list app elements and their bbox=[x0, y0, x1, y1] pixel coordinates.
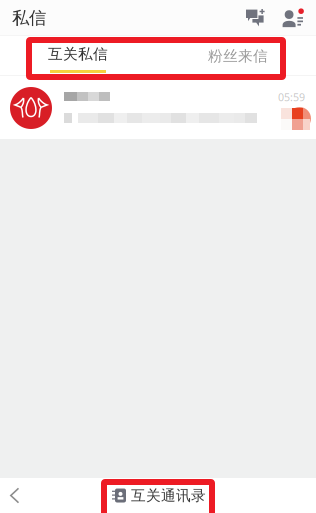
button[interactable]: 互关私信 bbox=[23, 36, 133, 76]
button[interactable]: Back bbox=[2, 478, 28, 513]
button[interactable]: New message bbox=[240, 9, 272, 27]
button[interactable]: 互关通讯录 bbox=[106, 478, 212, 513]
button[interactable]: 粉丝来信 bbox=[183, 36, 293, 76]
button[interactable]: 05:59 bbox=[0, 76, 316, 139]
staticText: 05:59 bbox=[278, 90, 305, 104]
staticText: 粉丝来信 bbox=[208, 47, 268, 65]
staticText: 互关私信 bbox=[48, 45, 108, 63]
staticText: 互关通讯录 bbox=[131, 486, 206, 504]
button[interactable]: Contacts bbox=[272, 8, 308, 27]
staticText: 私信 bbox=[12, 7, 46, 29]
